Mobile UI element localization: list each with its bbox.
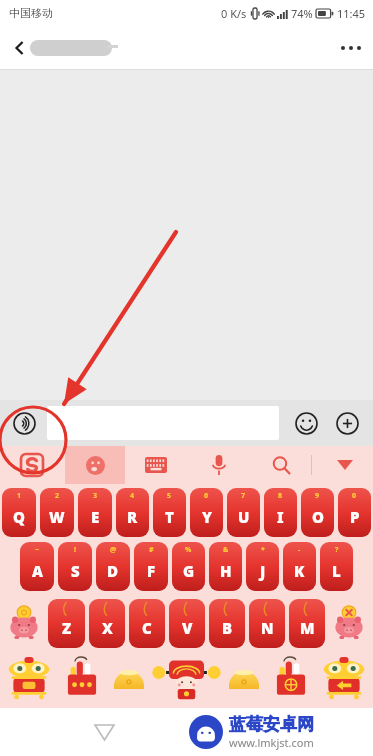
staticText: !	[74, 545, 76, 555]
staticText: 7	[241, 491, 246, 501]
staticText: R	[127, 507, 138, 527]
staticText: ?	[335, 545, 339, 555]
button[interactable]: 7	[227, 488, 260, 537]
staticText: 74%	[291, 6, 313, 21]
staticText: E	[91, 507, 100, 527]
button[interactable]: Space	[150, 653, 223, 705]
staticText: V	[182, 618, 193, 638]
staticText: 3	[93, 491, 98, 501]
staticText: 1	[17, 491, 22, 501]
button[interactable]: 8	[264, 488, 297, 537]
button[interactable]: Back	[82, 710, 126, 754]
staticText: F	[147, 561, 156, 581]
button[interactable]: 4	[116, 488, 149, 537]
staticText: A	[32, 561, 43, 581]
staticText: X	[102, 618, 113, 638]
staticText: T	[165, 507, 174, 527]
button[interactable]: !	[58, 542, 92, 591]
staticText: 中国移动	[9, 6, 53, 20]
staticText: D	[107, 561, 119, 581]
button[interactable]: Return	[317, 653, 371, 705]
button[interactable]	[30, 40, 112, 56]
staticText: H	[220, 561, 232, 581]
button[interactable]: N	[249, 599, 285, 648]
staticText: Y	[202, 507, 212, 527]
button[interactable]: Hide keyboard	[322, 446, 367, 484]
button[interactable]: Search	[259, 446, 304, 484]
staticText: M	[300, 618, 315, 638]
staticText: W	[49, 507, 65, 527]
staticText: 8	[278, 491, 283, 501]
button[interactable]: X	[89, 599, 125, 648]
button[interactable]: Keyboard layout	[133, 446, 178, 484]
button[interactable]: Sogou input menu	[8, 446, 56, 484]
staticText: I	[277, 507, 284, 527]
staticText: 6	[204, 491, 209, 501]
button[interactable]: Z	[48, 599, 85, 648]
staticText: B	[222, 618, 233, 638]
button[interactable]: @	[96, 542, 130, 591]
button[interactable]: Symbols	[2, 653, 56, 705]
staticText: 2	[55, 491, 60, 501]
button[interactable]: Voice	[196, 446, 241, 484]
button[interactable]: #	[134, 542, 168, 591]
staticText: L	[332, 561, 341, 581]
button[interactable]: V	[169, 599, 205, 648]
button[interactable]: %	[172, 542, 205, 591]
button[interactable]: Emoji panel	[65, 446, 125, 484]
staticText: *	[261, 545, 265, 555]
staticText: &	[223, 545, 229, 555]
staticText: @	[110, 545, 117, 555]
staticText: %	[185, 545, 192, 555]
staticText: 蓝莓安卓网	[229, 714, 314, 735]
button[interactable]: 9	[301, 488, 334, 537]
button[interactable]: Delete	[327, 596, 371, 650]
button[interactable]: 2	[40, 488, 74, 537]
staticText: G	[183, 561, 195, 581]
staticText: 0	[352, 491, 357, 501]
button[interactable]: Comma	[108, 653, 150, 705]
button[interactable]: More options	[329, 26, 373, 70]
button[interactable]: -	[283, 542, 316, 591]
button[interactable]: 0	[338, 488, 371, 537]
staticText: 4	[130, 491, 135, 501]
button[interactable]: B	[209, 599, 245, 648]
button[interactable]: Period	[223, 653, 265, 705]
button[interactable]: 1	[2, 488, 36, 537]
staticText: #	[149, 545, 154, 555]
button[interactable]: ?	[320, 542, 353, 591]
staticText: Z	[62, 618, 72, 638]
staticText: U	[238, 507, 250, 527]
staticText: -	[298, 545, 301, 555]
staticText: J	[260, 561, 266, 581]
staticText: N	[261, 618, 274, 638]
button[interactable]: 6	[190, 488, 223, 537]
staticText: C	[142, 618, 152, 638]
staticText: S	[71, 561, 80, 581]
button[interactable]	[47, 406, 279, 440]
button[interactable]: Enter	[265, 653, 317, 705]
staticText: 0 K/s	[221, 6, 247, 21]
staticText: 5	[167, 491, 172, 501]
button[interactable]: ~	[20, 542, 54, 591]
button[interactable]: 5	[153, 488, 186, 537]
staticText: O	[312, 507, 324, 527]
button[interactable]: M	[289, 599, 325, 648]
button[interactable]: Emoji	[288, 405, 324, 441]
button[interactable]: &	[209, 542, 242, 591]
button[interactable]: More	[329, 405, 365, 441]
staticText: 11:45	[337, 6, 366, 21]
staticText: Q	[13, 507, 25, 527]
button[interactable]: Back	[0, 28, 40, 68]
staticText: P	[350, 507, 360, 527]
staticText: K	[294, 561, 305, 581]
staticText: 9	[315, 491, 320, 501]
button[interactable]: Numbers 123	[56, 653, 108, 705]
button[interactable]: *	[246, 542, 279, 591]
button[interactable]: 3	[78, 488, 112, 537]
staticText: www.lmkjst.com	[229, 735, 314, 750]
staticText: ~	[35, 545, 40, 555]
button[interactable]: Voice input	[6, 405, 42, 441]
button[interactable]: C	[129, 599, 165, 648]
button[interactable]: Shift	[2, 596, 46, 650]
